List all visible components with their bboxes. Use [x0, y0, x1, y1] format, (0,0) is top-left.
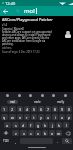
staticText: address SourceForge: 6 Dec 2019 17:23	[2, 46, 40, 53]
staticText: o	[61, 115, 64, 120]
button[interactable]: k	[56, 122, 62, 128]
button[interactable]: ?123	[1, 138, 11, 144]
button[interactable]: Keyboard tool	[63, 93, 68, 98]
button[interactable]: 3	[17, 106, 23, 112]
button[interactable]: a	[4, 122, 11, 128]
button[interactable]: n	[49, 130, 55, 136]
button[interactable]: 1	[1, 106, 8, 112]
staticText: ARCore/Playground Patcher	[2, 17, 53, 22]
staticText: q	[3, 115, 6, 120]
staticText: 2	[11, 107, 14, 112]
staticText: v	[37, 131, 39, 136]
staticText: 12:40	[5, 1, 16, 6]
button[interactable]: 4	[24, 106, 30, 112]
button[interactable]: b	[42, 130, 48, 136]
button[interactable]: q	[1, 114, 8, 120]
staticText: r	[26, 115, 28, 120]
button[interactable]: i	[52, 114, 58, 120]
staticText: ,	[15, 139, 16, 144]
staticText: e	[19, 115, 22, 120]
staticText: 8	[54, 107, 57, 112]
staticText: mol	[10, 100, 16, 104]
staticText: g	[37, 123, 40, 128]
button[interactable]: l	[63, 122, 69, 128]
button[interactable]: f	[28, 122, 34, 128]
button[interactable]: z	[12, 130, 19, 136]
button[interactable]: Search	[62, 138, 72, 144]
button[interactable]: d	[20, 122, 27, 128]
button[interactable]: Keyboard tool	[5, 93, 10, 98]
staticText: h	[44, 123, 47, 128]
button[interactable]: 7	[45, 106, 51, 112]
button[interactable]: h	[42, 122, 48, 128]
button[interactable]: e	[17, 114, 23, 120]
button[interactable]: x	[20, 130, 27, 136]
staticText: 1	[3, 107, 6, 112]
staticText: 5	[33, 107, 36, 112]
staticText: ?123	[3, 139, 9, 143]
button[interactable]: ARCore/Playground Patcher	[2, 17, 71, 53]
staticText: 0	[68, 107, 71, 112]
staticText: v1.4 Taponia / MarcinD Enables ARCore su…	[2, 23, 52, 45]
staticText: 3	[19, 107, 22, 112]
staticText: 6	[40, 107, 43, 112]
button[interactable]: Keyboard tool	[28, 93, 33, 98]
button[interactable]: p	[66, 114, 72, 120]
button[interactable]: 2	[9, 106, 16, 112]
staticText: n	[51, 131, 54, 136]
staticText: f	[30, 123, 32, 128]
button[interactable]: y	[38, 114, 44, 120]
staticText: x	[23, 131, 25, 136]
staticText: z	[15, 131, 17, 136]
button[interactable]: Back	[0, 6, 11, 16]
button[interactable]: o	[59, 114, 65, 120]
staticText: p	[68, 115, 71, 120]
button[interactable]: w	[9, 114, 16, 120]
button[interactable]: 9	[59, 106, 65, 112]
button[interactable]: Backspace	[63, 130, 72, 136]
staticText: i	[55, 115, 56, 120]
staticText: b	[44, 131, 47, 136]
staticText: m	[57, 131, 61, 136]
staticText: 7	[47, 107, 50, 112]
button[interactable]: r	[24, 114, 30, 120]
button[interactable]: mole	[25, 99, 49, 105]
staticText: s	[15, 123, 17, 128]
staticText: 4	[26, 107, 29, 112]
button[interactable]: c	[28, 130, 34, 136]
button[interactable]: 5	[31, 106, 37, 112]
staticText: u	[47, 115, 50, 120]
staticText: k	[58, 123, 60, 128]
staticText: d	[22, 123, 25, 128]
staticText: y	[40, 115, 42, 120]
staticText: c	[30, 131, 32, 136]
button[interactable]: v	[35, 130, 41, 136]
staticText: mole	[34, 100, 41, 104]
button[interactable]: Keyboard tool	[51, 93, 56, 98]
button[interactable]: 6	[38, 106, 44, 112]
staticText: j	[52, 123, 53, 128]
button[interactable]: g	[35, 122, 41, 128]
staticText: 9	[61, 107, 64, 112]
button[interactable]: mol	[0, 99, 25, 105]
staticText: molly	[57, 100, 65, 104]
button[interactable]: molly	[49, 99, 73, 105]
button[interactable]: j	[49, 122, 55, 128]
staticText: w	[11, 115, 14, 120]
button[interactable]: m	[56, 130, 62, 136]
button[interactable]: u	[45, 114, 51, 120]
staticText: l	[66, 123, 67, 128]
button[interactable]: 0	[66, 106, 72, 112]
staticText: t	[33, 115, 35, 120]
button[interactable]: ,	[12, 138, 19, 144]
button[interactable]: Keyboard tool	[40, 93, 45, 98]
button[interactable]: .	[54, 138, 61, 144]
button[interactable]: s	[12, 122, 19, 128]
staticText: mol	[24, 7, 35, 15]
button[interactable]: Keyboard tool	[17, 93, 22, 98]
button[interactable]: Shift	[1, 130, 11, 136]
button[interactable]: t	[31, 114, 37, 120]
button[interactable]: 8	[52, 106, 58, 112]
staticText: .	[57, 139, 58, 144]
